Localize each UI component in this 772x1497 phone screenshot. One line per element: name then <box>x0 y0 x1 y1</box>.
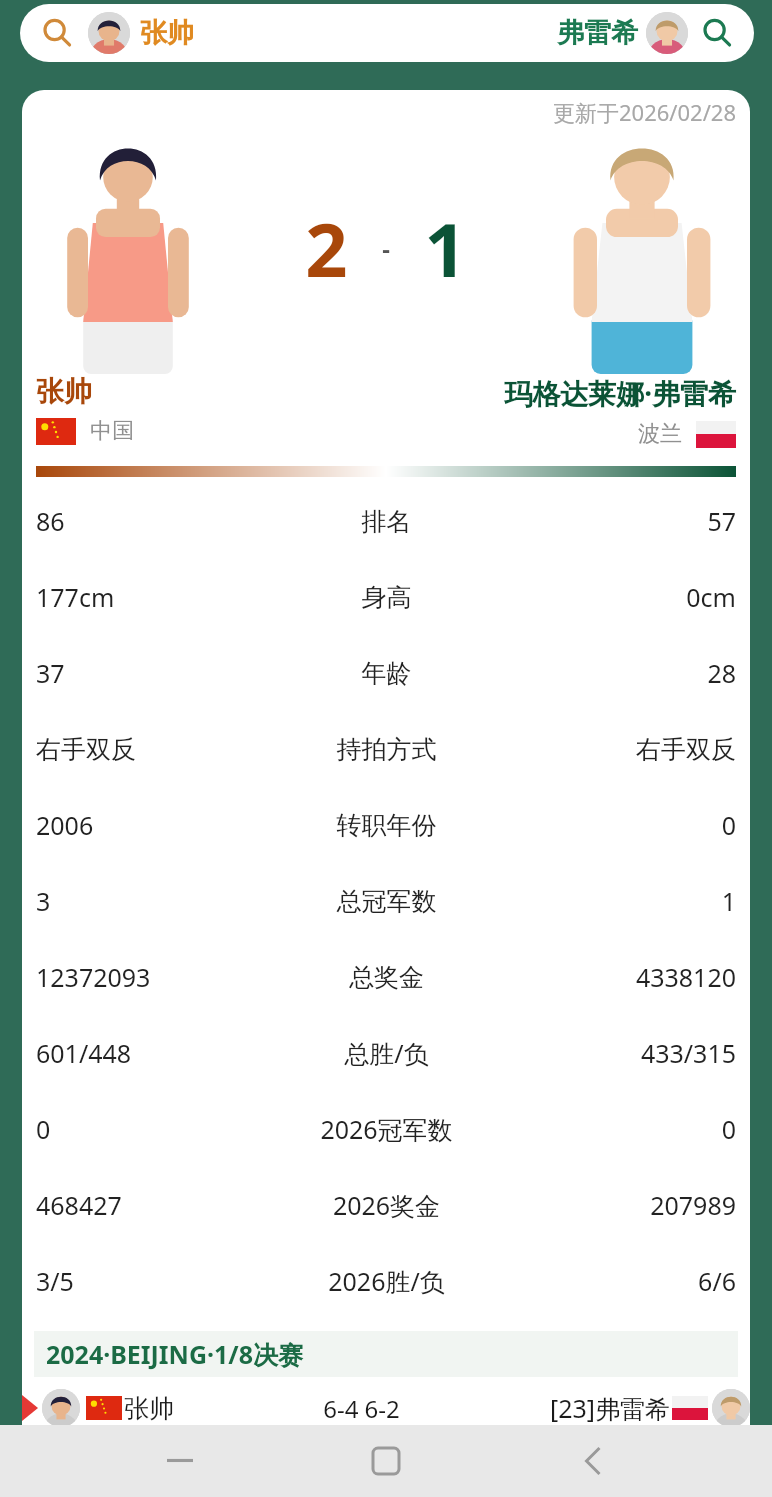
button[interactable]: 2024·BEIJING·1/8决赛 <box>34 1331 738 1377</box>
staticText: 张帅 <box>140 16 194 50</box>
staticText: 1 <box>424 198 467 299</box>
staticText: 4338120 <box>503 960 736 994</box>
staticText: 6-4 6-2 <box>323 1392 400 1425</box>
button[interactable]: 601/448 <box>22 1015 750 1091</box>
staticText: 右手双反 <box>503 734 736 765</box>
staticText: 1 <box>503 884 736 918</box>
button[interactable]: 12372093 <box>22 939 750 1015</box>
staticText: 转职年份 <box>270 810 503 841</box>
button[interactable]: 0 <box>22 1091 750 1167</box>
staticText: 波兰 <box>638 420 682 448</box>
staticText: 2 <box>305 198 348 299</box>
staticText: 持拍方式 <box>270 734 503 765</box>
staticText: 中国 <box>90 417 134 445</box>
staticText: 年龄 <box>270 658 503 689</box>
staticText: 0 <box>503 808 736 842</box>
button[interactable]: 177cm <box>22 559 750 635</box>
staticText: 468427 <box>36 1188 270 1222</box>
staticText: 玛格达莱娜·弗雷希 <box>347 374 736 412</box>
staticText: 177cm <box>36 580 270 614</box>
staticText: 更新于2026/02/28 <box>552 97 736 127</box>
staticText: 12372093 <box>36 960 270 994</box>
staticText: 张帅 <box>124 1393 174 1424</box>
staticText: 排名 <box>270 506 503 537</box>
staticText: 2024·BEIJING·1/8决赛 <box>46 1337 304 1371</box>
staticText: 2006 <box>36 808 270 842</box>
staticText: 2026胜/负 <box>270 1264 503 1298</box>
staticText: 弗雷希 <box>557 16 638 50</box>
button[interactable]: 3/5 <box>22 1243 750 1319</box>
button[interactable]: Home <box>359 1434 413 1488</box>
button[interactable]: Search left player <box>20 4 754 62</box>
button[interactable]: Search right player <box>702 18 732 48</box>
staticText: 0 <box>503 1112 736 1146</box>
button[interactable]: 37 <box>22 635 750 711</box>
staticText: 右手双反 <box>36 734 270 765</box>
staticText: 张帅 <box>36 374 92 409</box>
staticText: 0cm <box>503 580 736 614</box>
staticText: 总冠军数 <box>270 886 503 917</box>
staticText: 0 <box>36 1112 270 1146</box>
staticText: [23]弗雷希 <box>549 1391 670 1425</box>
staticText: 433/315 <box>503 1036 736 1070</box>
staticText: 37 <box>36 656 270 690</box>
staticText: 86 <box>36 504 270 538</box>
button[interactable]: 3 <box>22 863 750 939</box>
button[interactable]: Recents <box>153 1434 207 1488</box>
staticText: 2026奖金 <box>270 1188 503 1222</box>
staticText: 总奖金 <box>270 962 503 993</box>
button[interactable]: Back <box>566 1434 620 1488</box>
button[interactable]: 张帅 <box>22 1377 750 1439</box>
staticText: 3/5 <box>36 1264 270 1298</box>
button[interactable]: 86 <box>22 483 750 559</box>
staticText: 2026冠军数 <box>270 1112 503 1146</box>
button[interactable]: 468427 <box>22 1167 750 1243</box>
staticText: 601/448 <box>36 1036 270 1070</box>
button[interactable]: Search left player <box>42 18 72 48</box>
staticText: 6/6 <box>503 1264 736 1298</box>
staticText: 207989 <box>503 1188 736 1222</box>
staticText: 57 <box>503 504 736 538</box>
button[interactable]: 右手双反 <box>22 711 750 787</box>
staticText: 身高 <box>270 582 503 613</box>
staticText: - <box>382 232 390 265</box>
staticText: 28 <box>503 656 736 690</box>
staticText: 总胜/负 <box>270 1036 503 1070</box>
staticText: 3 <box>36 884 270 918</box>
button[interactable]: 2006 <box>22 787 750 863</box>
